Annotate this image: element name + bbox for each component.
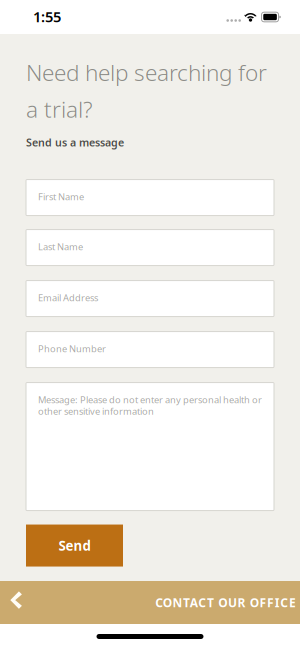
staticText: 1:55 [33,7,61,26]
button[interactable]: Last Name [26,229,274,265]
button[interactable]: Email Address [26,280,274,316]
staticText: Phone Number [38,342,106,355]
staticText: Need help searching for a trial? [26,57,267,124]
button[interactable]: Send [26,524,123,566]
staticText: Send us a message [26,135,124,150]
staticText: Send [58,537,90,554]
button[interactable]: Phone Number [26,331,274,367]
staticText: Email Address [38,291,98,304]
staticText: Last Name [38,240,83,253]
button[interactable]: Message: Please do not enter any persona… [26,382,274,510]
staticText: Message: Please do not enter any persona… [38,393,262,417]
staticText: CONTACT OUR OFFICE [155,594,296,610]
button[interactable]: First Name [26,179,274,215]
button[interactable]: CONTACT OUR OFFICE [0,581,300,624]
staticText: First Name [38,190,84,203]
